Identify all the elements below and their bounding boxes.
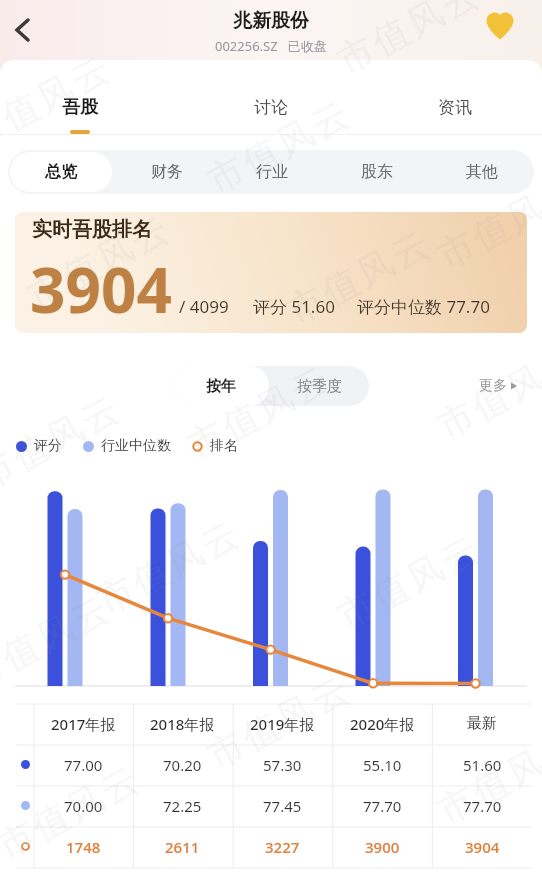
staticText: 77.70: [463, 796, 502, 816]
staticText: 市值风云: [0, 756, 147, 869]
staticText: 资讯: [438, 97, 472, 118]
button[interactable]: [482, 8, 518, 44]
staticText: 77.70: [363, 796, 402, 816]
staticText: 市值风云: [0, 46, 117, 159]
staticText: 市值风云: [429, 166, 542, 279]
staticText: 市值风云: [279, 221, 437, 334]
staticText: 财务: [151, 162, 183, 182]
staticText: 77.00: [64, 755, 103, 775]
button[interactable]: 其他: [429, 150, 534, 194]
staticText: 更多: [479, 377, 507, 395]
staticText: 3227: [265, 837, 300, 857]
button[interactable]: 总览: [10, 152, 112, 192]
staticText: 市值风云: [0, 586, 117, 699]
staticText: 评分中位数 77.70: [357, 295, 490, 318]
staticText: 72.25: [163, 796, 202, 816]
staticText: 2019年报: [250, 714, 315, 734]
staticText: / 4099: [179, 295, 229, 318]
button[interactable]: 行业: [219, 150, 324, 194]
button[interactable]: [6, 12, 42, 48]
button[interactable]: 吾股: [35, 84, 125, 130]
button[interactable]: 股东: [324, 150, 429, 194]
staticText: 77.45: [263, 796, 302, 816]
staticText: 最新: [467, 714, 497, 733]
staticText: 70.00: [64, 796, 103, 816]
button[interactable]: 讨论: [226, 84, 316, 130]
staticText: 市值风云: [179, 356, 337, 469]
staticText: 行业: [256, 162, 288, 182]
staticText: 吾股: [62, 96, 98, 119]
staticText: 市值风云: [429, 721, 542, 834]
button[interactable]: 更多: [479, 377, 518, 395]
button[interactable]: 按年: [173, 366, 269, 406]
staticText: 2020年报: [350, 714, 415, 734]
staticText: 55.10: [363, 755, 402, 775]
staticText: 市值风云: [199, 666, 357, 779]
staticText: 3904: [30, 247, 172, 331]
staticText: 其他: [466, 162, 498, 182]
staticText: 70.20: [163, 755, 202, 775]
staticText: 市值风云: [199, 91, 357, 204]
staticText: 评分: [34, 437, 62, 455]
staticText: 评分 51.60: [253, 295, 335, 318]
staticText: 按年: [206, 377, 236, 396]
staticText: 51.60: [463, 755, 502, 775]
staticText: 行业中位数: [101, 437, 171, 455]
staticText: 57.30: [263, 755, 302, 775]
staticText: 排名: [210, 437, 238, 455]
staticText: 市值风云: [329, 0, 487, 84]
staticText: 2017年报: [51, 714, 116, 734]
staticText: 市值风云: [329, 526, 487, 639]
staticText: 002256.SZ 已收盘: [215, 37, 327, 55]
staticText: 讨论: [254, 97, 288, 118]
staticText: 1748: [66, 837, 101, 857]
staticText: 按季度: [297, 377, 342, 396]
staticText: 市值风云: [0, 386, 127, 499]
staticText: 总览: [45, 162, 77, 182]
staticText: 2611: [165, 837, 200, 857]
staticText: 市值风云: [89, 511, 247, 624]
button[interactable]: 资讯: [410, 84, 500, 130]
staticText: 市值风云: [429, 336, 542, 449]
staticText: 实时吾股排名: [32, 217, 152, 242]
staticText: 兆新股份: [233, 9, 309, 33]
button[interactable]: 按季度: [269, 366, 369, 406]
staticText: 3904: [465, 837, 500, 857]
button[interactable]: 财务: [114, 150, 219, 194]
staticText: 股东: [361, 162, 393, 182]
staticText: 市值风云: [19, 206, 177, 319]
staticText: 2018年报: [150, 714, 215, 734]
staticText: 3900: [365, 837, 400, 857]
